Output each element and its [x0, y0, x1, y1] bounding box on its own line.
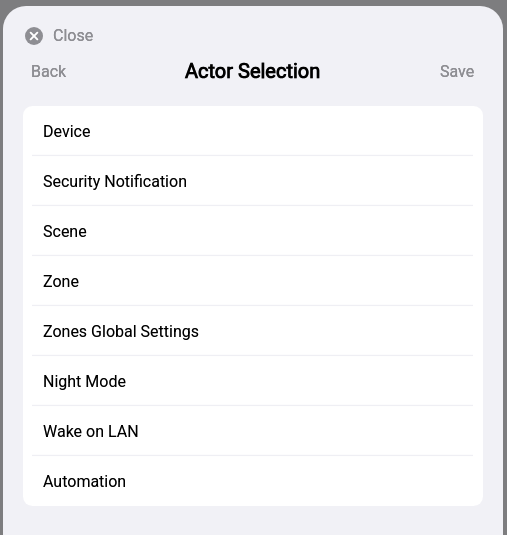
staticText: Save: [440, 62, 475, 81]
staticText: Device: [43, 122, 91, 141]
button[interactable]: Scene: [23, 206, 483, 256]
staticText: Device: [43, 122, 91, 141]
other: Close: [25, 27, 43, 45]
staticText: Zones Global Settings: [43, 322, 199, 341]
button[interactable]: Zones Global Settings: [23, 306, 483, 356]
staticText: Zone: [43, 272, 79, 291]
staticText: Wake on LAN: [43, 422, 139, 441]
staticText: Zones Global Settings: [43, 322, 199, 341]
staticText: Night Mode: [43, 372, 126, 391]
button[interactable]: Device: [23, 106, 483, 156]
staticText: Zone: [43, 272, 79, 291]
button[interactable]: Save: [440, 62, 475, 81]
staticText: Actor Selection: [185, 59, 321, 82]
staticText: Back: [31, 62, 67, 81]
button[interactable]: Zone: [23, 256, 483, 306]
button[interactable]: Automation: [23, 456, 483, 506]
staticText: Save: [440, 62, 475, 81]
staticText: Automation: [43, 472, 127, 491]
staticText: Back: [31, 62, 67, 81]
staticText: Close: [53, 26, 94, 45]
staticText: Security Notification: [43, 172, 187, 191]
button[interactable]: Night Mode: [23, 356, 483, 406]
staticText: Automation: [43, 472, 127, 491]
staticText: Wake on LAN: [43, 422, 139, 441]
staticText: Actor Selection: [185, 59, 321, 82]
staticText: Scene: [43, 222, 87, 241]
staticText: Scene: [43, 222, 87, 241]
staticText: Close: [53, 26, 94, 45]
button[interactable]: Back: [31, 62, 67, 81]
staticText: Night Mode: [43, 372, 126, 391]
button[interactable]: Wake on LAN: [23, 406, 483, 456]
button[interactable]: Close: [25, 26, 94, 45]
staticText: Security Notification: [43, 172, 187, 191]
button[interactable]: Security Notification: [23, 156, 483, 206]
